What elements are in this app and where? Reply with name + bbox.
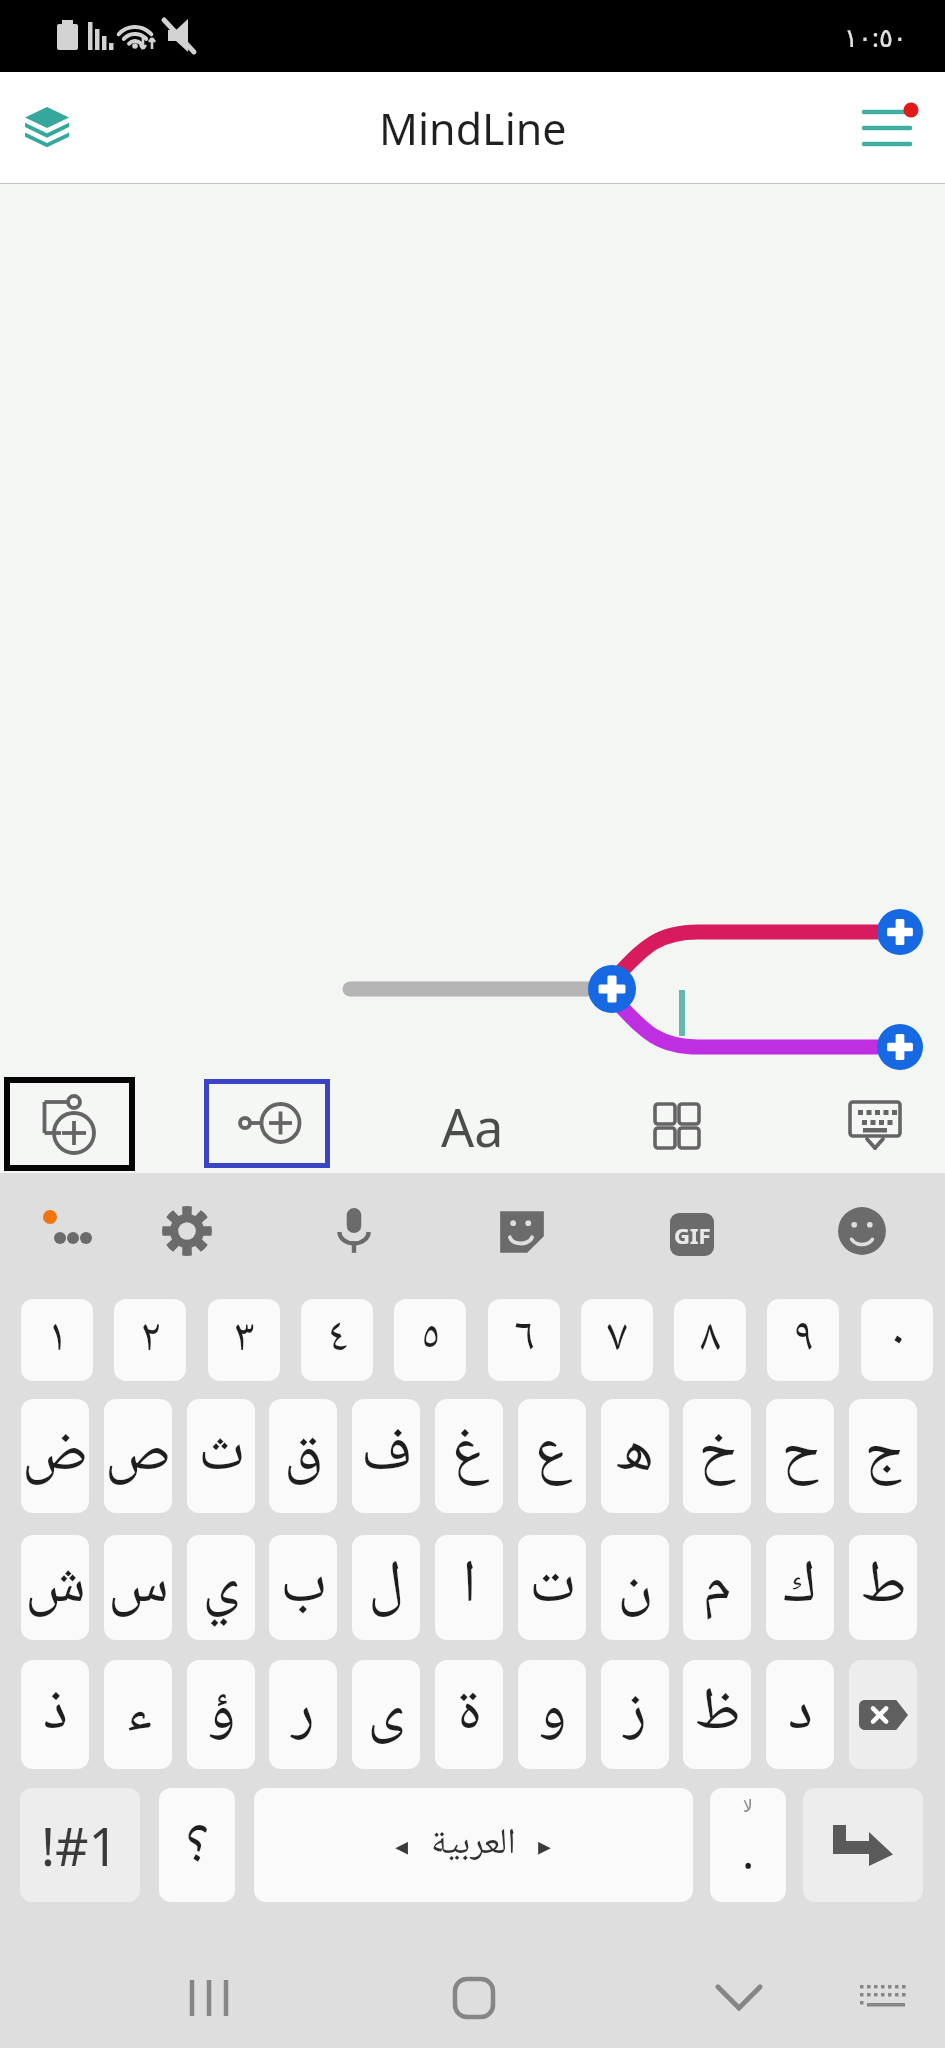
button[interactable]: Recents — [159, 1947, 259, 2048]
button[interactable]: ط — [849, 1535, 917, 1640]
staticText: ر — [291, 1664, 315, 1766]
staticText: ف — [361, 1405, 412, 1507]
button[interactable]: Backspace — [849, 1660, 917, 1769]
staticText: غ — [451, 1405, 488, 1507]
staticText: ش — [25, 1537, 86, 1639]
button[interactable]: ٦ — [488, 1299, 560, 1381]
button[interactable]: ا — [435, 1535, 503, 1640]
button[interactable]: ض — [21, 1399, 89, 1513]
staticText: ٨ — [700, 1301, 721, 1379]
button[interactable]: ٢ — [114, 1299, 186, 1381]
button[interactable]: Enter — [803, 1788, 923, 1902]
button[interactable]: ؟ — [159, 1788, 235, 1902]
button[interactable]: More — [37, 1203, 93, 1259]
button[interactable]: Add child node — [4, 1077, 135, 1171]
button[interactable]: ظ — [683, 1660, 751, 1769]
button[interactable]: GIF — [670, 1213, 714, 1256]
button[interactable]: لا — [710, 1788, 786, 1902]
button[interactable]: م — [683, 1535, 751, 1640]
button[interactable]: Add sibling node — [204, 1079, 330, 1168]
staticText: !#1 — [41, 1810, 119, 1881]
button[interactable]: ؤ — [187, 1660, 255, 1769]
button[interactable]: Change keyboard — [842, 1947, 922, 2048]
staticText: ة — [457, 1664, 482, 1766]
button[interactable]: ل — [352, 1535, 420, 1640]
staticText: MindLine — [379, 99, 567, 158]
staticText: ١ — [47, 1301, 68, 1379]
button[interactable]: ١ — [21, 1299, 93, 1381]
button[interactable]: Hide keyboard — [689, 1947, 789, 2048]
button[interactable]: ٤ — [301, 1299, 373, 1381]
staticText: ؤ — [207, 1664, 236, 1766]
button[interactable]: س — [104, 1535, 172, 1640]
button[interactable]: Home — [424, 1947, 524, 2048]
button[interactable]: ه — [601, 1399, 669, 1513]
button[interactable]: ٧ — [581, 1299, 653, 1381]
staticText: ٩ — [793, 1301, 814, 1379]
button[interactable]: ف — [352, 1399, 420, 1513]
button[interactable]: ى — [352, 1660, 420, 1769]
button[interactable]: ث — [187, 1399, 255, 1513]
button[interactable]: ش — [21, 1535, 89, 1640]
button[interactable]: ٨ — [674, 1299, 746, 1381]
button[interactable]: ز — [601, 1660, 669, 1769]
button[interactable]: ٥ — [394, 1299, 466, 1381]
staticText: العربية — [431, 1815, 516, 1876]
button[interactable]: ٩ — [767, 1299, 839, 1381]
staticText: ٣ — [234, 1301, 255, 1379]
staticText: GIF — [674, 1220, 711, 1250]
staticText: ى — [367, 1664, 405, 1766]
staticText: لا — [743, 1796, 753, 1816]
staticText: Aa — [441, 1091, 504, 1162]
staticText: ز — [623, 1664, 647, 1766]
button[interactable]: ◂ — [254, 1788, 693, 1902]
button[interactable]: ت — [518, 1535, 586, 1640]
button[interactable]: Voice input — [326, 1203, 382, 1259]
staticText: ٠ — [887, 1301, 908, 1379]
button[interactable]: Settings — [159, 1203, 215, 1259]
staticText: ب — [280, 1537, 327, 1639]
button[interactable]: ة — [435, 1660, 503, 1769]
button[interactable]: و — [518, 1660, 586, 1769]
button[interactable]: Stickers — [494, 1203, 550, 1259]
button[interactable]: ع — [518, 1399, 586, 1513]
button[interactable]: ج — [849, 1399, 917, 1513]
button[interactable]: Menu — [840, 88, 934, 168]
staticText: ه — [616, 1405, 654, 1507]
button[interactable]: خ — [683, 1399, 751, 1513]
button[interactable]: غ — [435, 1399, 503, 1513]
staticText: ٦ — [514, 1301, 535, 1379]
staticText: د — [788, 1664, 813, 1766]
button[interactable]: ٣ — [208, 1299, 280, 1381]
staticText: خ — [698, 1405, 737, 1507]
staticText: . — [742, 1820, 755, 1883]
button[interactable]: Grid layout — [607, 1079, 747, 1173]
staticText: ع — [534, 1405, 571, 1507]
staticText: ن — [617, 1537, 653, 1639]
staticText: ت — [529, 1537, 576, 1639]
button[interactable]: د — [766, 1660, 834, 1769]
button[interactable]: ء — [104, 1660, 172, 1769]
button[interactable]: ن — [601, 1535, 669, 1640]
button[interactable]: ك — [766, 1535, 834, 1640]
button[interactable]: ي — [187, 1535, 255, 1640]
button[interactable]: Layers — [14, 94, 80, 162]
button[interactable]: !#1 — [20, 1788, 140, 1902]
staticText: ي — [202, 1537, 240, 1639]
button[interactable]: ذ — [21, 1660, 89, 1769]
button[interactable]: Hide keyboard — [805, 1079, 945, 1173]
button[interactable]: ح — [766, 1399, 834, 1513]
staticText: ض — [22, 1405, 88, 1507]
button[interactable]: ص — [104, 1399, 172, 1513]
staticText: ك — [783, 1537, 817, 1639]
staticText: ٧ — [607, 1301, 628, 1379]
button[interactable]: ب — [269, 1535, 337, 1640]
staticText: ◂ — [395, 1831, 409, 1861]
button[interactable]: Emoji — [834, 1203, 890, 1259]
button[interactable]: ق — [269, 1399, 337, 1513]
button[interactable]: ٠ — [861, 1299, 933, 1381]
button[interactable]: Aa — [400, 1079, 545, 1173]
staticText: ظ — [694, 1664, 741, 1766]
staticText: و — [538, 1664, 567, 1766]
button[interactable]: ر — [269, 1660, 337, 1769]
